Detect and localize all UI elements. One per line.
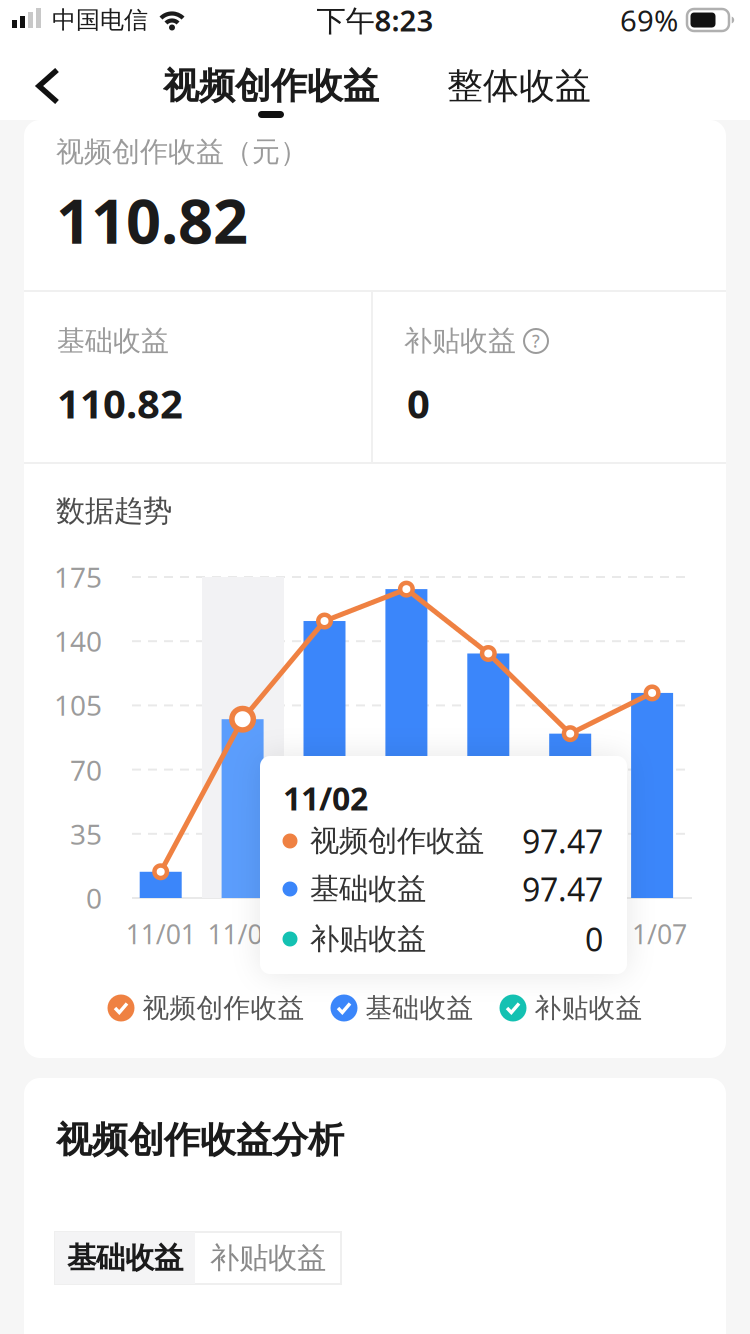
staticText: 97.47 xyxy=(522,868,603,910)
staticText: 0 xyxy=(86,879,102,917)
staticText: 105 xyxy=(54,686,102,724)
staticText: 11/02 xyxy=(208,916,278,952)
staticText: 97.47 xyxy=(522,820,603,862)
staticText: 视频创作收益（元） xyxy=(56,135,308,169)
button[interactable]: 基础收益 xyxy=(55,1232,195,1284)
staticText: 0 xyxy=(407,376,430,429)
staticText: 补贴收益 xyxy=(404,324,516,358)
staticText: 下午8:23 xyxy=(316,0,433,39)
staticText: 视频创作收益 xyxy=(142,992,304,1024)
button[interactable]: 补贴收益 xyxy=(499,992,642,1024)
button[interactable]: 返回 xyxy=(33,66,73,106)
staticText: 中国电信 xyxy=(52,5,148,35)
staticText: 11/02 xyxy=(283,777,368,819)
staticText: 基础收益 xyxy=(310,871,426,907)
staticText: 11/06 xyxy=(535,916,605,952)
staticText: ? xyxy=(532,329,540,352)
staticText: 140 xyxy=(54,622,102,660)
staticText: 11/01 xyxy=(126,916,196,952)
staticText: 补贴收益 xyxy=(310,921,426,957)
staticText: 视频创作收益 xyxy=(163,64,379,108)
staticText: 视频创作收益 xyxy=(310,823,484,859)
staticText: 110.82 xyxy=(56,179,248,261)
staticText: 补贴收益 xyxy=(210,1240,326,1276)
button[interactable]: 补贴收益说明 xyxy=(522,327,550,355)
button[interactable]: 补贴收益 xyxy=(195,1232,341,1284)
staticText: 11/03 xyxy=(289,916,359,952)
staticText: 基础收益 xyxy=(67,1240,183,1276)
staticText: 数据趋势 xyxy=(56,493,172,529)
staticText: 0 xyxy=(585,918,603,960)
button[interactable]: 视频创作收益 xyxy=(107,992,304,1024)
staticText: 补贴收益 xyxy=(534,992,642,1024)
staticText: 11/07 xyxy=(617,916,687,952)
staticText: 视频创作收益分析 xyxy=(56,1118,344,1162)
button[interactable]: 基础收益 xyxy=(330,992,473,1024)
staticText: 110.82 xyxy=(57,376,183,429)
staticText: 35 xyxy=(70,815,102,853)
button[interactable]: 整体收益 xyxy=(444,53,594,119)
staticText: 整体收益 xyxy=(447,64,591,108)
staticText: 基础收益 xyxy=(365,992,473,1024)
staticText: 70 xyxy=(70,751,102,789)
staticText: 11/04 xyxy=(371,916,441,952)
staticText: 基础收益 xyxy=(57,324,169,358)
button[interactable]: 视频创作收益 xyxy=(156,58,386,122)
staticText: 175 xyxy=(54,558,102,596)
staticText: 69% xyxy=(620,0,678,39)
